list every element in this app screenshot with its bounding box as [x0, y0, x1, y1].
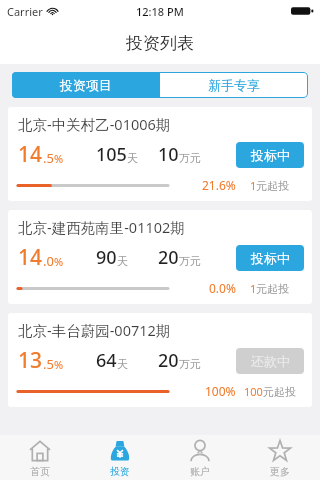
- staticText: 100%: [205, 383, 236, 399]
- staticText: 天: [127, 151, 138, 165]
- staticText: 64: [96, 348, 117, 373]
- staticText: 万元: [179, 151, 201, 165]
- staticText: 1元起投: [250, 178, 290, 193]
- staticText: 投资项目: [60, 77, 112, 93]
- staticText: 100元起投: [244, 384, 296, 399]
- staticText: .5%: [43, 355, 64, 373]
- staticText: 北京-建西苑南里-01102期: [18, 217, 185, 237]
- staticText: Carrier: [7, 4, 43, 19]
- button[interactable]: More: [240, 435, 320, 480]
- staticText: 90: [96, 245, 117, 270]
- button[interactable]: Account: [160, 435, 240, 480]
- staticText: .0%: [43, 252, 64, 270]
- staticText: 14: [18, 140, 43, 169]
- staticText: 账户: [190, 465, 210, 478]
- other: Home: [28, 439, 52, 463]
- staticText: 10: [158, 142, 179, 167]
- staticText: 万元: [179, 254, 201, 268]
- staticText: 21.6%: [202, 177, 236, 193]
- button[interactable]: 新手专享: [160, 72, 308, 98]
- staticText: 万元: [179, 357, 201, 371]
- staticText: .5%: [43, 149, 64, 167]
- staticText: 投资: [110, 465, 130, 478]
- button[interactable]: 北京-丰台蔚园-00712期: [8, 313, 312, 407]
- button[interactable]: 投资项目: [12, 72, 160, 98]
- button[interactable]: Home: [0, 435, 80, 480]
- button[interactable]: 还款中: [236, 348, 304, 374]
- staticText: 投标中: [251, 147, 290, 163]
- staticText: 投标中: [251, 250, 290, 266]
- staticText: 北京-中关村乙-01006期: [18, 114, 171, 134]
- staticText: 1元起投: [250, 281, 290, 296]
- staticText: 天: [117, 357, 128, 371]
- staticText: 北京-丰台蔚园-00712期: [18, 320, 171, 340]
- button[interactable]: 投标中: [236, 142, 304, 168]
- button[interactable]: 北京-中关村乙-01006期: [8, 107, 312, 201]
- other: Invest: [108, 439, 132, 463]
- staticText: 还款中: [251, 353, 290, 369]
- staticText: 20: [158, 245, 179, 270]
- staticText: 105: [96, 142, 127, 167]
- staticText: 天: [117, 254, 128, 268]
- button[interactable]: 投标中: [236, 245, 304, 271]
- staticText: 12:18 PM: [136, 4, 184, 19]
- staticText: 新手专享: [208, 77, 260, 93]
- staticText: 首页: [30, 465, 50, 478]
- staticText: 13: [18, 346, 43, 375]
- button[interactable]: Invest: [80, 435, 160, 480]
- staticText: 投资列表: [126, 33, 194, 54]
- button[interactable]: 北京-建西苑南里-01102期: [8, 210, 312, 304]
- other: Account: [188, 439, 212, 463]
- staticText: 20: [158, 348, 179, 373]
- staticText: 0.0%: [209, 280, 236, 296]
- staticText: 更多: [270, 465, 290, 478]
- staticText: 14: [18, 243, 43, 272]
- other: More: [268, 439, 292, 463]
